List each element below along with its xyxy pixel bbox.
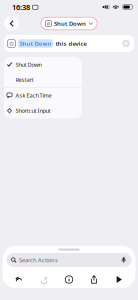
button[interactable]: Share bbox=[85, 273, 102, 286]
button[interactable]: Restart bbox=[4, 72, 82, 87]
button[interactable]: Run bbox=[110, 273, 127, 286]
staticText: 16:38 bbox=[12, 2, 30, 12]
staticText: Shut Down bbox=[54, 20, 86, 27]
staticText: Shut Down bbox=[19, 40, 51, 47]
button[interactable]: Shut Down bbox=[4, 57, 82, 72]
button[interactable]: Details bbox=[60, 273, 77, 286]
button[interactable]: Shut Down bbox=[41, 17, 97, 30]
staticText: Restart bbox=[15, 76, 33, 83]
staticText: Shortcut Input bbox=[15, 107, 50, 114]
staticText: Shut Down bbox=[15, 61, 41, 68]
button[interactable]: Back bbox=[3, 15, 20, 32]
button[interactable]: Shortcut Input bbox=[4, 103, 82, 118]
button[interactable]: Ask Each Time bbox=[4, 88, 82, 103]
button[interactable]: Search Actions bbox=[6, 253, 131, 267]
button[interactable]: Redo bbox=[35, 273, 52, 286]
staticText: Search Actions bbox=[19, 256, 58, 264]
staticText: Ask Each Time bbox=[15, 92, 51, 99]
staticText: this device bbox=[55, 40, 86, 47]
button[interactable]: Undo bbox=[10, 273, 27, 286]
